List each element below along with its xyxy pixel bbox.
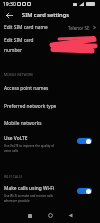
button[interactable]: Toggle Use VoLTE bbox=[77, 138, 92, 144]
staticText: Make calls using Wi-Fi bbox=[4, 185, 55, 192]
button[interactable]: Toggle Make calls using Wi-Fi bbox=[77, 188, 92, 194]
staticText: Edit SIM card name bbox=[4, 24, 48, 31]
staticText: Mobile networks bbox=[4, 120, 42, 127]
staticText: MOBILE NETWORK bbox=[4, 72, 34, 76]
staticText: Use VoLTE to improve the quality of bbox=[4, 144, 54, 148]
staticText: WI-FI CALLS bbox=[4, 174, 23, 178]
staticText: wherever possible bbox=[4, 199, 30, 203]
button[interactable]: Make calls using Wi-Fi bbox=[0, 183, 100, 207]
button[interactable]: Access point names bbox=[0, 81, 100, 95]
staticText: Telenor SE bbox=[68, 25, 90, 31]
staticText: Use Wi-Fi to make and receive calls bbox=[4, 194, 54, 198]
button[interactable]: Back bbox=[3, 9, 15, 21]
staticText: Preferred network type bbox=[4, 103, 57, 110]
staticText: 19:30 bbox=[3, 1, 16, 8]
staticText: SIM card settings bbox=[22, 11, 69, 19]
staticText: voice calls bbox=[4, 149, 19, 153]
button[interactable]: Mobile networks bbox=[0, 116, 100, 130]
staticText: Edit SIM card bbox=[4, 37, 34, 44]
button[interactable]: Preferred network type bbox=[0, 99, 100, 113]
button[interactable]: Back bbox=[62, 207, 79, 223]
staticText: Access point names bbox=[4, 85, 49, 92]
button[interactable]: Home bbox=[42, 207, 59, 223]
staticText: number bbox=[4, 47, 23, 54]
button[interactable]: Edit SIM card bbox=[0, 35, 100, 55]
button[interactable]: Use VoLTE bbox=[0, 133, 100, 157]
button[interactable]: Edit SIM card name bbox=[0, 21, 100, 34]
button[interactable]: Recent apps bbox=[21, 207, 38, 223]
staticText: Use VoLTE bbox=[4, 135, 28, 142]
